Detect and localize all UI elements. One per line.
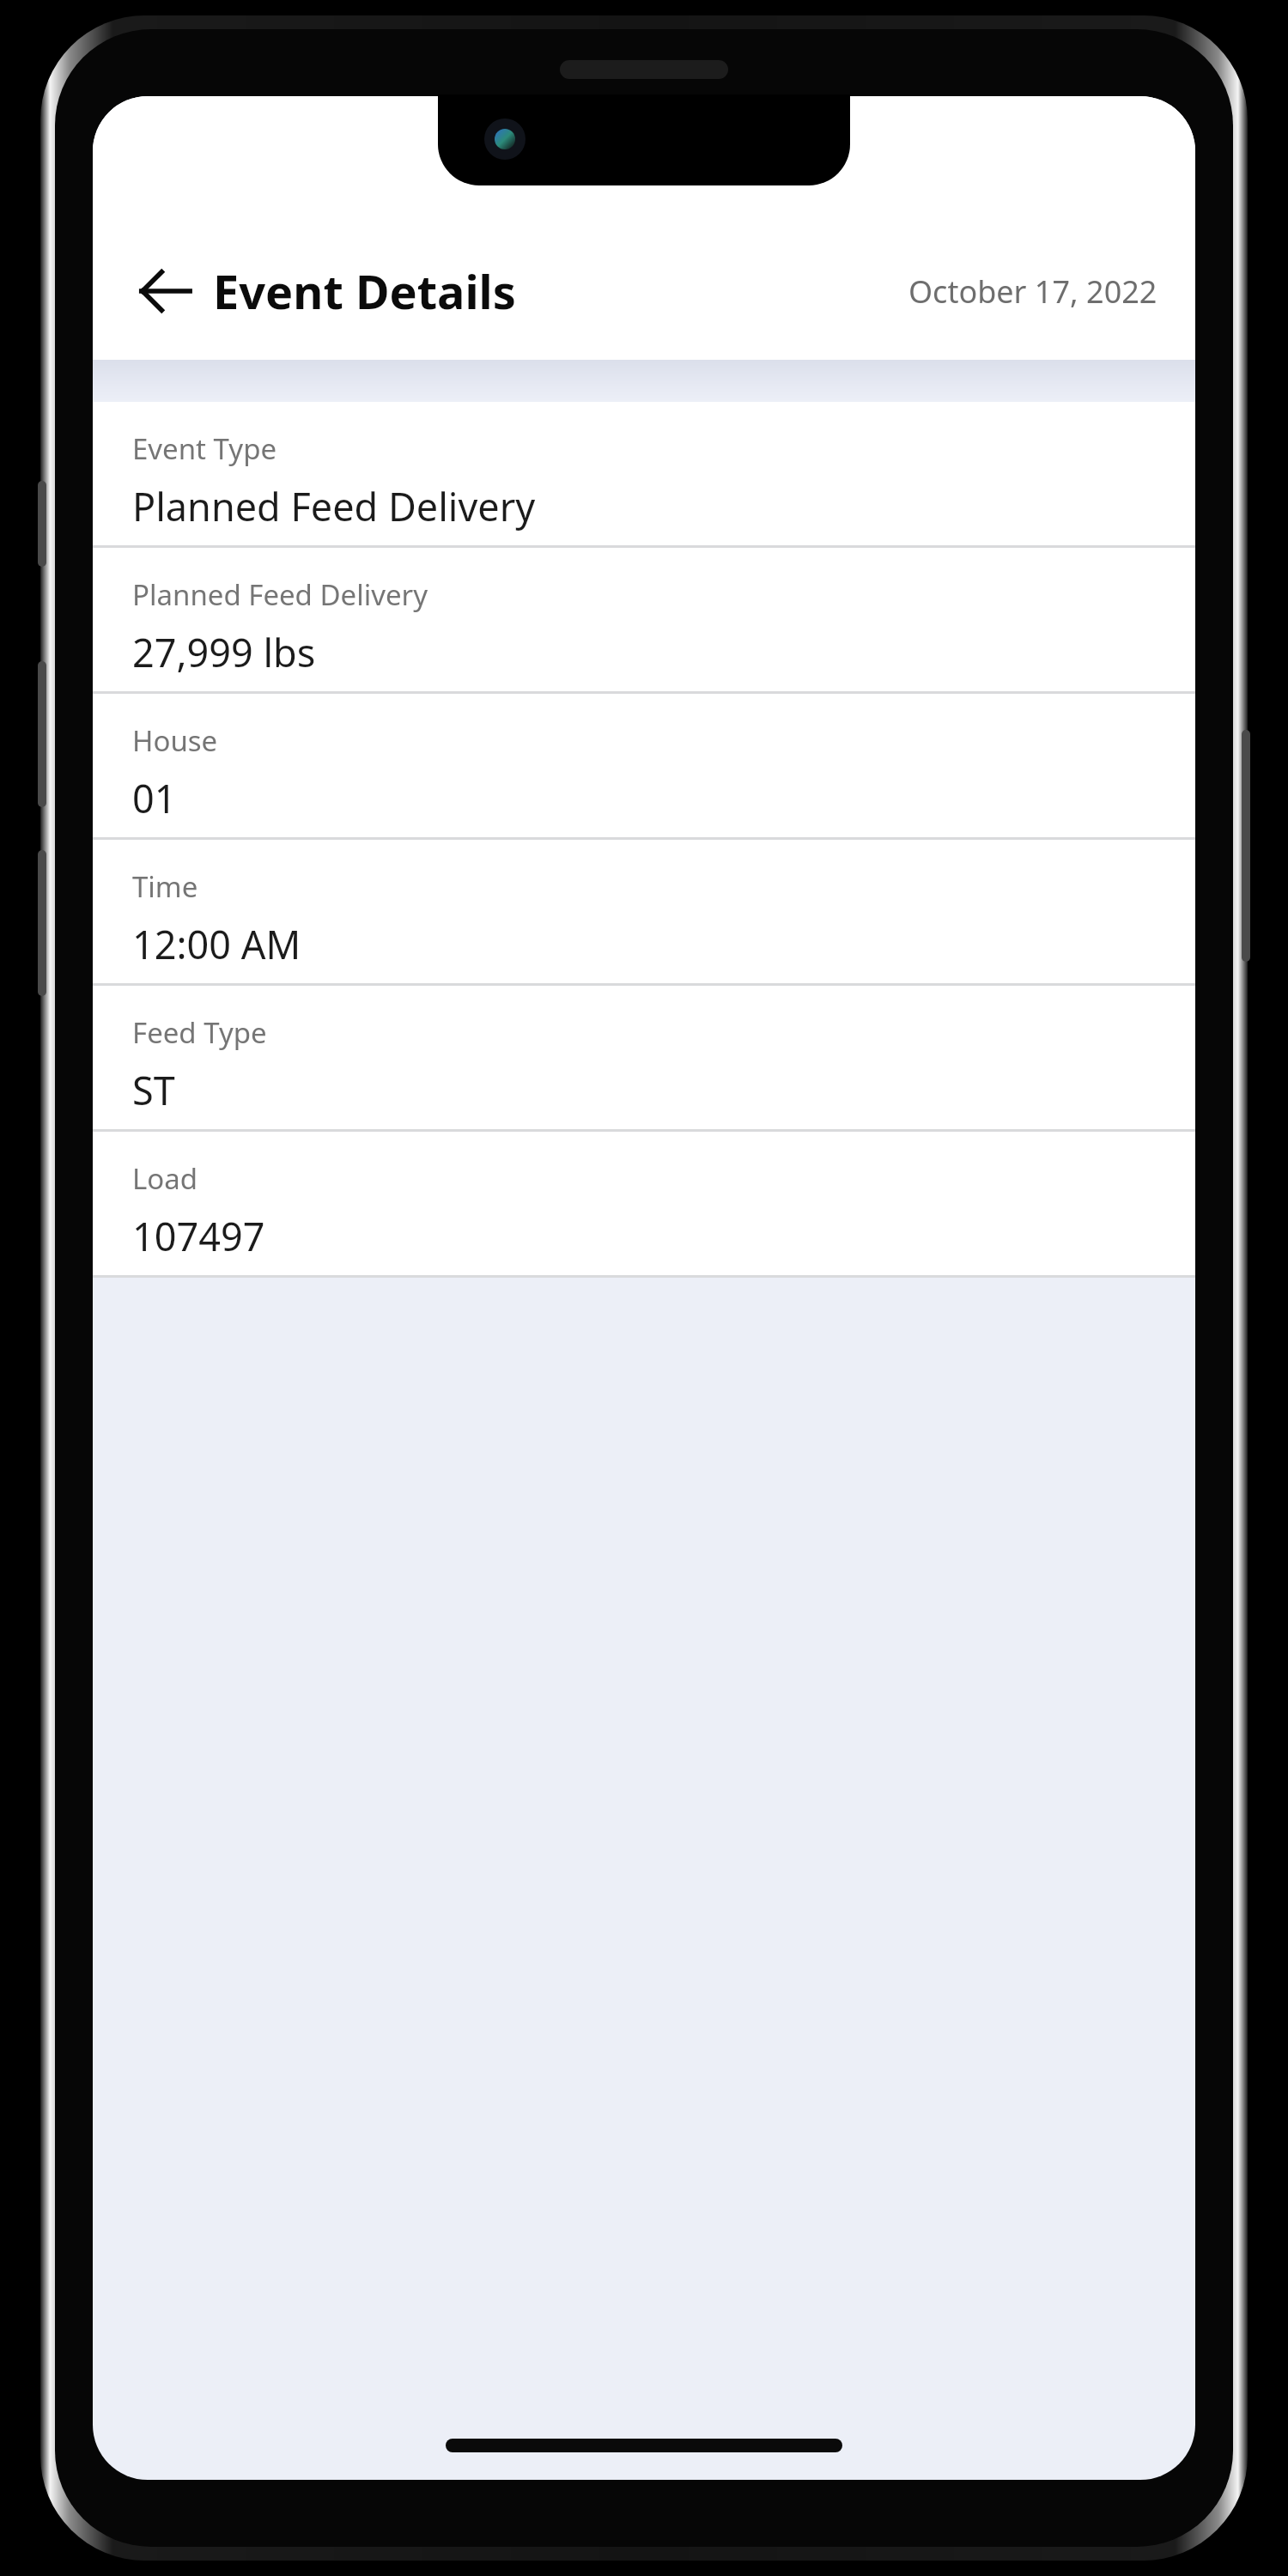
- staticText: Time: [132, 867, 198, 906]
- staticText: Load: [132, 1159, 198, 1198]
- staticText: ST: [132, 1064, 175, 1116]
- staticText: Planned Feed Delivery: [132, 480, 536, 532]
- staticText: 107497: [132, 1210, 265, 1262]
- staticText: Event Details: [213, 259, 516, 323]
- staticText: House: [132, 721, 218, 760]
- button[interactable]: Back: [117, 243, 213, 339]
- button[interactable]: Event Type: [93, 402, 1195, 548]
- staticText: 01: [132, 772, 177, 824]
- button[interactable]: Feed Type: [93, 986, 1195, 1132]
- staticText: October 17, 2022: [908, 270, 1157, 313]
- button[interactable]: Time: [93, 840, 1195, 986]
- staticText: Event Type: [132, 429, 277, 468]
- staticText: Feed Type: [132, 1013, 267, 1052]
- staticText: 27,999 lbs: [132, 626, 316, 678]
- button[interactable]: Planned Feed Delivery: [93, 548, 1195, 694]
- button[interactable]: House: [93, 694, 1195, 840]
- button[interactable]: Load: [93, 1132, 1195, 1278]
- staticText: Planned Feed Delivery: [132, 575, 428, 614]
- staticText: 12:00 AM: [132, 918, 301, 970]
